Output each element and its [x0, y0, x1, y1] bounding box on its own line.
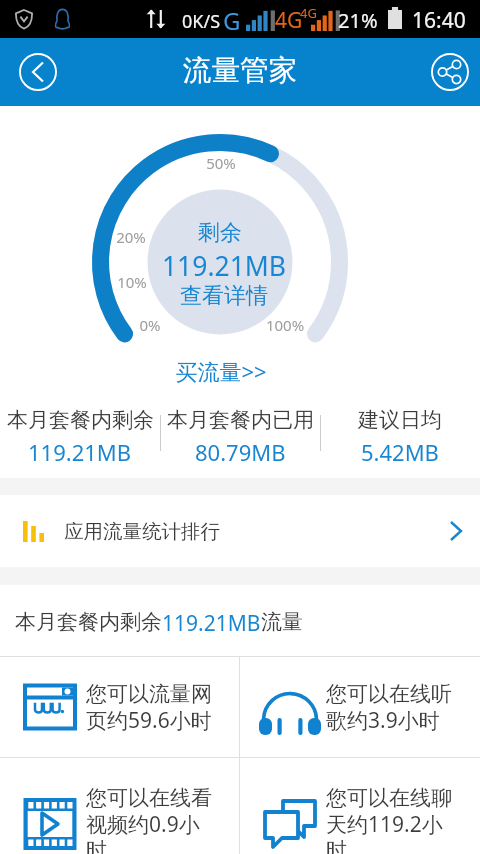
staticText: 本月套餐内已用: [167, 407, 314, 433]
staticText: 剩余: [170, 219, 270, 247]
button[interactable]: Back: [18, 52, 58, 92]
staticText: 4G: [300, 4, 317, 22]
staticText: 4G: [275, 6, 303, 35]
staticText: 119.21MB: [28, 437, 132, 467]
staticText: 本月套餐内剩余: [15, 609, 162, 635]
staticText: 您可以在线看视频约0.9小时: [86, 785, 216, 854]
button[interactable]: Music: [240, 657, 480, 757]
staticText: 买流量>>: [121, 356, 321, 386]
staticText: 查看详情: [172, 282, 276, 308]
button[interactable]: Chat: [240, 758, 480, 854]
button[interactable]: Video: [0, 758, 239, 854]
staticText: G: [223, 4, 241, 37]
staticText: 20%: [101, 227, 161, 247]
staticText: 0%: [120, 315, 180, 335]
staticText: 您可以流量网页约59.6小时: [86, 681, 216, 734]
staticText: 流量管家: [140, 53, 340, 89]
staticText: 119.21MB: [154, 248, 294, 284]
staticText: 5.42MB: [361, 437, 439, 467]
button[interactable]: 查看详情: [172, 282, 276, 308]
other: Chat: [262, 796, 318, 852]
staticText: 流量: [261, 609, 303, 635]
staticText: 应用流量统计排行: [64, 519, 220, 544]
staticText: 0K/S: [182, 9, 221, 34]
staticText: 10%: [102, 272, 162, 292]
staticText: 建议日均: [358, 407, 442, 433]
button[interactable]: 本月套餐内已用: [160, 384, 320, 414]
staticText: 100%: [255, 315, 315, 335]
button[interactable]: 买流量>>: [121, 356, 321, 386]
button[interactable]: 建议日均: [320, 384, 480, 414]
button[interactable]: 本月套餐内剩余: [0, 384, 160, 414]
other: Music: [262, 679, 318, 735]
button[interactable]: 应用流量统计排行: [0, 495, 480, 567]
staticText: 本月套餐内剩余: [7, 407, 154, 433]
staticText: 119.21MB: [162, 609, 261, 638]
staticText: 80.79MB: [195, 437, 286, 467]
staticText: 16:40: [412, 6, 466, 35]
staticText: 您可以在线聊天约119.2小时: [326, 785, 456, 854]
button[interactable]: Share: [430, 52, 470, 92]
staticText: 21%: [338, 7, 378, 34]
other: Web browsing: [22, 679, 78, 735]
other: Video: [22, 796, 78, 852]
button[interactable]: Web browsing: [0, 657, 239, 757]
staticText: 您可以在线听歌约3.9小时: [326, 681, 456, 734]
staticText: 50%: [191, 153, 251, 173]
